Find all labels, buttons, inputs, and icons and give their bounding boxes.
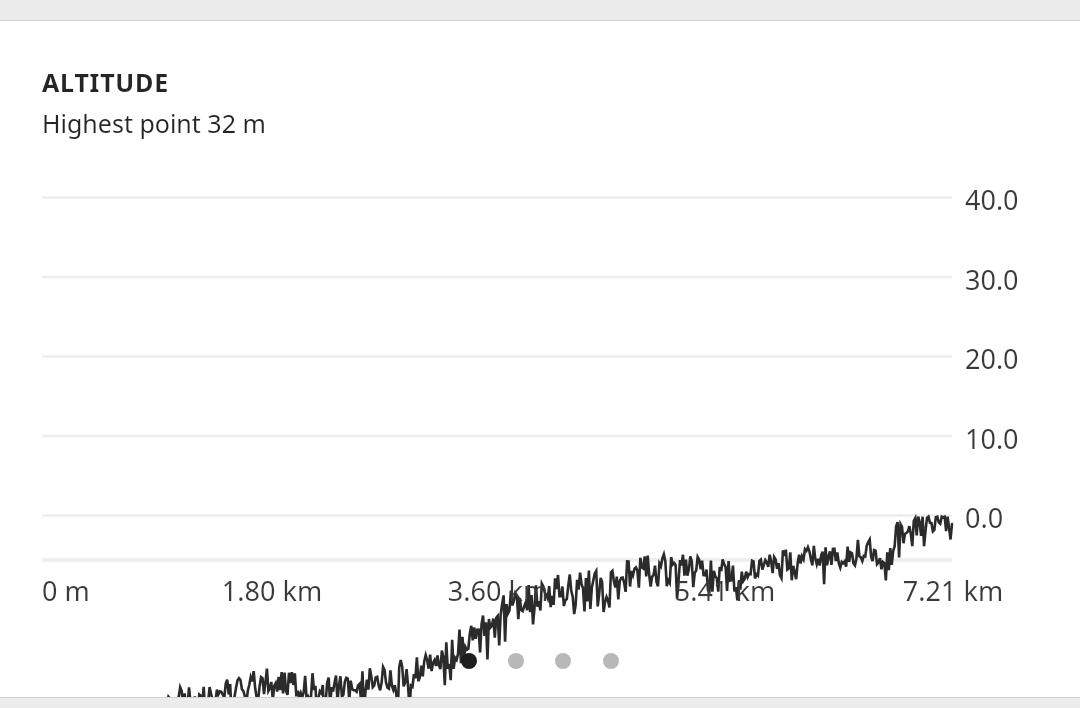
button[interactable]: Page 3 <box>555 653 571 669</box>
staticText: 40.0 <box>965 181 1019 218</box>
staticText: 0 m <box>42 572 90 609</box>
button[interactable]: Page 4 <box>603 653 619 669</box>
staticText: 3.60 km <box>418 572 578 609</box>
staticText: 0.0 <box>965 499 1004 536</box>
staticText: 30.0 <box>965 261 1019 298</box>
staticText: ALTITUDE <box>42 65 169 99</box>
staticText: 20.0 <box>965 340 1019 377</box>
button[interactable]: Altitude profile chart <box>0 0 1080 708</box>
staticText: 5.41 km <box>645 572 805 609</box>
staticText: Highest point 32 m <box>42 106 266 140</box>
button[interactable]: Page 2 <box>508 653 524 669</box>
staticText: 7.21 km <box>873 572 1033 609</box>
button[interactable]: Page 1 <box>461 653 477 669</box>
staticText: 10.0 <box>965 420 1019 457</box>
staticText: 1.80 km <box>192 572 352 609</box>
